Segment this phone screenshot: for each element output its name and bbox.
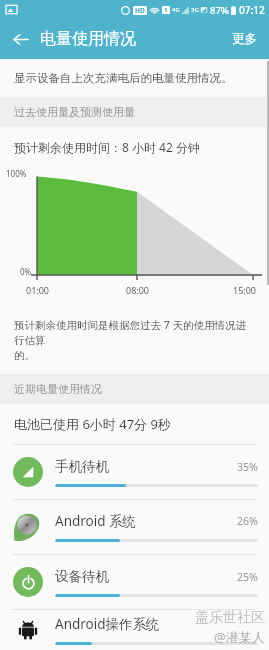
staticText: 01:00 [26,284,50,296]
staticText: 87% [210,4,229,17]
staticText: 设备待机 [55,568,237,585]
staticText: 手机待机 [55,458,237,475]
staticText: 15:00 [233,284,257,296]
staticText: 3G [191,6,199,14]
staticText: 1 [164,6,168,14]
staticText: HD [135,6,145,15]
staticText: 25% [237,570,258,584]
staticText: 电池已使用 6小时 47分 9秒 [14,415,171,433]
staticText: 预计剩余使用时间：8 小时 42 分钟 [14,139,200,155]
staticText: 0% [20,266,32,277]
staticText: 预计剩余使用时间是根据您过去 7 天的使用情况进行估算 的。 [14,318,255,362]
staticText: 26% [237,514,258,528]
button[interactable]: 更多 [220,19,269,59]
staticText: 4G [172,6,180,14]
button[interactable]: 设备待机 [0,555,269,609]
staticText: 35% [237,460,258,474]
staticText: 过去使用量及预测使用量 [14,105,135,119]
staticText: 07:12 [239,3,265,17]
staticText: 100% [6,168,27,179]
staticText: Android 系统 [55,512,237,530]
staticText: @潜某人 [214,628,265,646]
button[interactable]: Back [0,19,40,59]
staticText: 电量使用情况 [40,29,220,49]
staticText: 盖乐世社区 [195,609,265,627]
staticText: 显示设备自上次充满电后的电量使用情况。 [14,71,233,85]
button[interactable]: Android 系统 [0,500,269,554]
staticText: 更多 [232,31,257,47]
staticText: 近期电量使用情况 [14,382,102,396]
button[interactable]: 手机待机 [0,445,269,499]
staticText: 08:00 [126,284,150,296]
staticText: Android操作系统 [55,615,258,633]
button[interactable]: Android操作系统 [0,610,269,650]
